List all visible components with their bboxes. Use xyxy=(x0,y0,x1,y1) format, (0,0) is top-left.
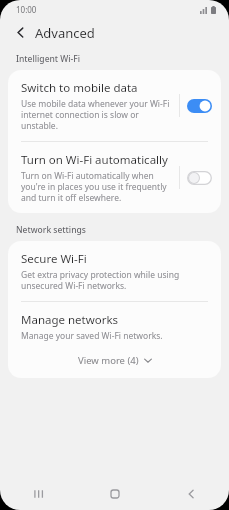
staticText: Get extra privacy protection while using… xyxy=(21,269,208,291)
staticText: Turn on Wi-Fi automatically when you're … xyxy=(21,170,173,203)
button[interactable]: Off xyxy=(187,171,212,185)
button[interactable]: View more (4) xyxy=(8,352,221,378)
button[interactable]: Switch to mobile data xyxy=(8,70,221,141)
button[interactable]: Home xyxy=(77,477,153,510)
button[interactable]: Recent apps xyxy=(0,477,77,510)
staticText: Network settings xyxy=(16,224,229,236)
staticText: Turn on Wi-Fi automatically xyxy=(21,152,168,168)
staticText: Switch to mobile data xyxy=(21,80,138,96)
button[interactable]: Turn on Wi-Fi automatically xyxy=(8,142,221,213)
staticText: Intelligent Wi-Fi xyxy=(16,53,229,65)
staticText: View more (4) xyxy=(78,354,139,367)
button[interactable]: Back xyxy=(153,477,229,510)
button[interactable]: On xyxy=(187,99,212,113)
staticText: Secure Wi-Fi xyxy=(21,251,87,267)
button[interactable]: Secure Wi-Fi xyxy=(8,241,221,301)
staticText: Advanced xyxy=(35,24,95,42)
staticText: 10:00 xyxy=(16,4,37,15)
staticText: Manage networks xyxy=(21,312,119,328)
button[interactable]: Navigate up xyxy=(9,21,32,44)
staticText: Use mobile data whenever your Wi-Fi inte… xyxy=(21,98,173,131)
staticText: Manage your saved Wi-Fi networks. xyxy=(21,330,163,342)
button[interactable]: Manage networks xyxy=(8,302,221,352)
